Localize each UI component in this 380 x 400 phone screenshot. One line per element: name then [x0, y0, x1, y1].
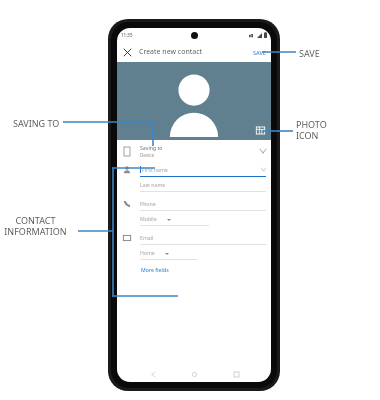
staticText: Phone	[140, 200, 156, 207]
button[interactable]: Add contact photo	[117, 62, 271, 140]
button[interactable]: Email	[121, 230, 266, 245]
button[interactable]: Phone	[121, 196, 266, 211]
staticText: More fields	[141, 266, 169, 273]
staticText: Last name	[140, 181, 166, 188]
staticText: Mobile	[140, 215, 157, 222]
button[interactable]: Mobile	[121, 211, 266, 226]
staticText: SAVE	[299, 47, 320, 59]
staticText: Email	[140, 234, 154, 241]
button[interactable]: SAVE	[251, 47, 268, 58]
staticText: SAVING TO	[13, 117, 60, 129]
staticText: CONTACT INFORMATION	[4, 214, 67, 237]
staticText: 11:35	[121, 32, 133, 38]
staticText: Create new contact	[139, 47, 203, 57]
button[interactable]: Home	[188, 368, 200, 380]
staticText: Saving to	[140, 144, 163, 151]
button[interactable]: Saving to	[117, 140, 271, 162]
button[interactable]: Close	[120, 45, 134, 59]
staticText: PHOTO ICON	[296, 118, 327, 141]
button[interactable]: Photo icon	[255, 125, 266, 136]
button[interactable]: Recents	[230, 368, 242, 380]
staticText: Home	[140, 249, 155, 256]
button[interactable]: Back	[147, 368, 159, 380]
staticText: Device	[140, 152, 155, 158]
button[interactable]: First name	[121, 162, 266, 177]
staticText: SAVE	[253, 49, 266, 56]
staticText: First name	[142, 166, 168, 173]
button[interactable]: Home	[121, 245, 266, 260]
button[interactable]: Last name	[121, 177, 266, 192]
button[interactable]: More fields	[140, 264, 170, 275]
